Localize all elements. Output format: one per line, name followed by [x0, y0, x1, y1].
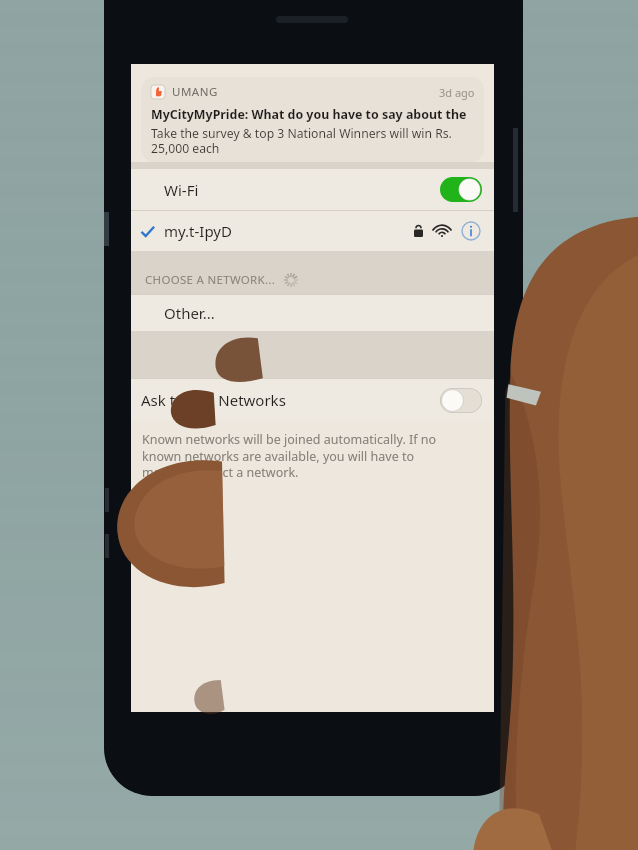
- staticText: Take the survey & top 3 National Winners…: [151, 125, 475, 156]
- button[interactable]: UMANG: [141, 77, 484, 162]
- staticText: Known networks will be joined automatica…: [142, 431, 458, 480]
- button[interactable]: Other...: [131, 295, 494, 331]
- staticText: my.t-IpyD: [164, 221, 232, 241]
- staticText: Ask to Join Networks: [141, 390, 286, 410]
- button[interactable]: Ask to join networks off: [440, 388, 482, 413]
- staticText: Wi-Fi: [164, 180, 199, 200]
- staticText: CHOOSE A NETWORK...: [145, 272, 276, 288]
- staticText: 3d ago: [439, 85, 475, 100]
- button[interactable]: Wi-Fi on: [440, 177, 482, 202]
- button[interactable]: my.t-IpyD: [131, 211, 494, 251]
- button[interactable]: Wi-Fi: [131, 169, 494, 210]
- staticText: Other...: [164, 303, 215, 323]
- button[interactable]: Network information: [461, 221, 481, 241]
- staticText: UMANG: [172, 84, 218, 100]
- staticText: MyCityMyPride: What do you have to say a…: [151, 106, 475, 123]
- button[interactable]: Ask to Join Networks: [131, 379, 494, 421]
